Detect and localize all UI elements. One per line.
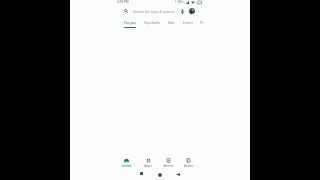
staticText: Movies [163,164,174,168]
button[interactable]: Home [154,169,165,180]
button[interactable]: Account [189,8,195,14]
button[interactable]: Games [116,158,136,168]
button[interactable]: Movies [158,158,178,168]
button[interactable]: Top charts [144,21,160,25]
staticText: 3:10 PM [117,0,129,4]
staticText: Apps [144,164,152,168]
button[interactable]: Events [183,21,194,25]
button[interactable]: Search for apps & games [121,8,178,17]
staticText: Top charts [144,21,160,25]
staticText: 1.0KB/s [175,0,185,4]
button[interactable]: Back [172,169,183,180]
staticText: Books [184,164,193,168]
staticText: Kids [168,21,175,25]
staticText: Search for apps & games [133,9,175,14]
staticText: Games [121,164,132,168]
button[interactable]: Books [178,158,198,168]
button[interactable]: Kids [168,21,175,25]
button[interactable]: Pr [200,21,204,25]
staticText: Events [183,21,194,25]
staticText: For you [124,21,136,25]
staticText: Pr [200,21,204,25]
button[interactable]: Recents [136,168,147,179]
button[interactable]: For you [124,21,136,25]
button[interactable]: Apps [138,158,158,168]
button[interactable]: Voice search [178,7,186,15]
